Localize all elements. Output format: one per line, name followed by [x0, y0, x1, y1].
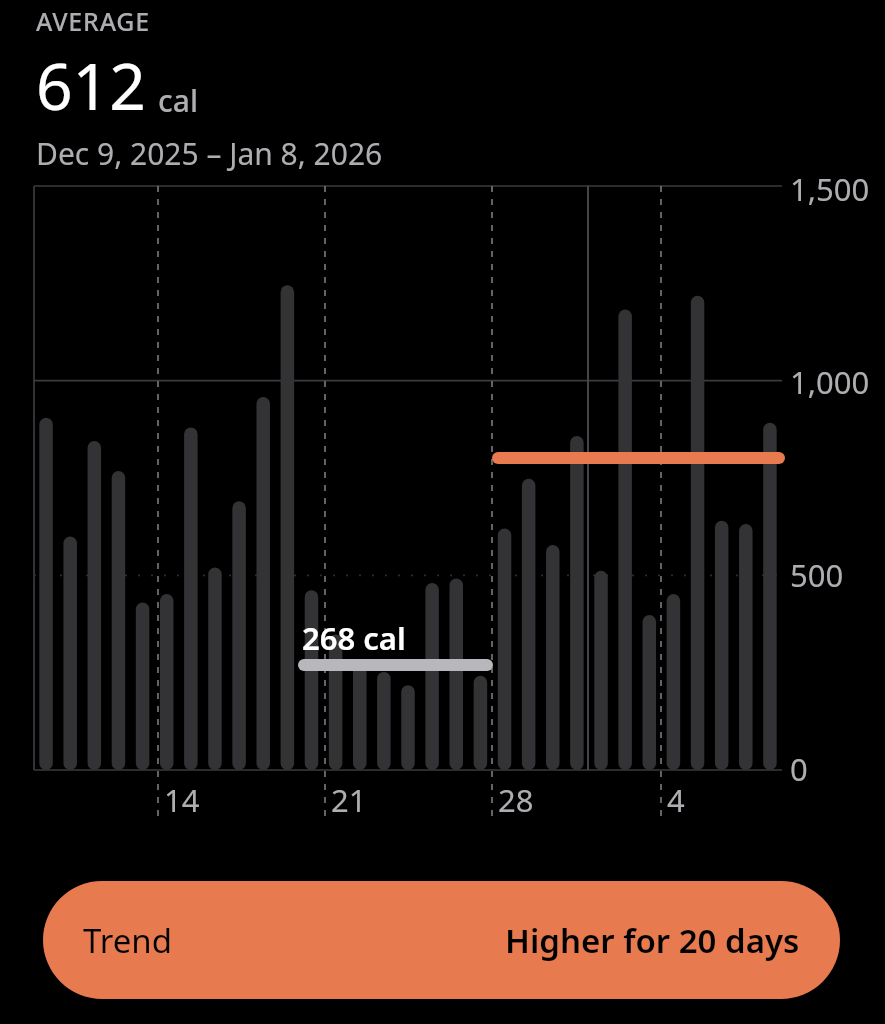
staticText: cal	[158, 80, 198, 121]
staticText: Higher for 20 days	[505, 918, 800, 963]
staticText: 0	[790, 748, 808, 790]
staticText: 500	[790, 554, 844, 596]
staticText: 28	[498, 779, 534, 821]
staticText: Dec 9, 2025 – Jan 8, 2026	[36, 133, 383, 174]
staticText: 4	[667, 779, 685, 821]
staticText: 612	[36, 42, 146, 129]
staticText: Trend	[83, 918, 172, 963]
staticText: 14	[164, 779, 200, 821]
staticText: 268 cal	[302, 617, 406, 659]
staticText: 1,500	[790, 168, 870, 210]
staticText: 1,000	[790, 361, 870, 403]
staticText: AVERAGE	[36, 4, 151, 38]
staticText: 21	[331, 779, 367, 821]
button[interactable]: Trend	[43, 881, 840, 999]
